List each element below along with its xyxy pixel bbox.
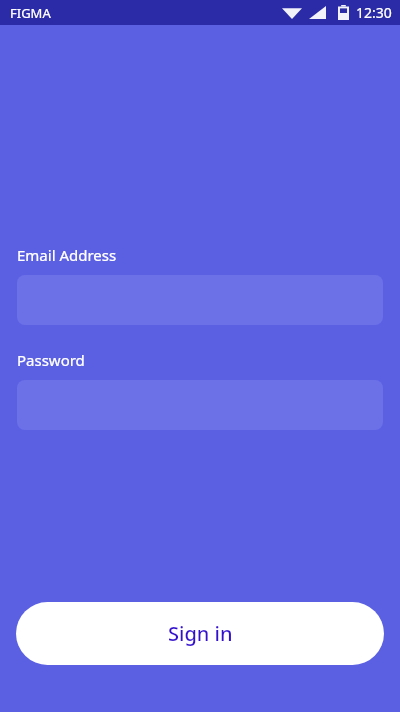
staticText: Sign in (168, 620, 233, 647)
staticText: FIGMA (10, 4, 51, 22)
staticText: 12:30 (356, 3, 392, 22)
staticText: Email Address (17, 245, 117, 265)
staticText: Password (17, 350, 85, 370)
button[interactable]: Sign in (16, 602, 384, 665)
